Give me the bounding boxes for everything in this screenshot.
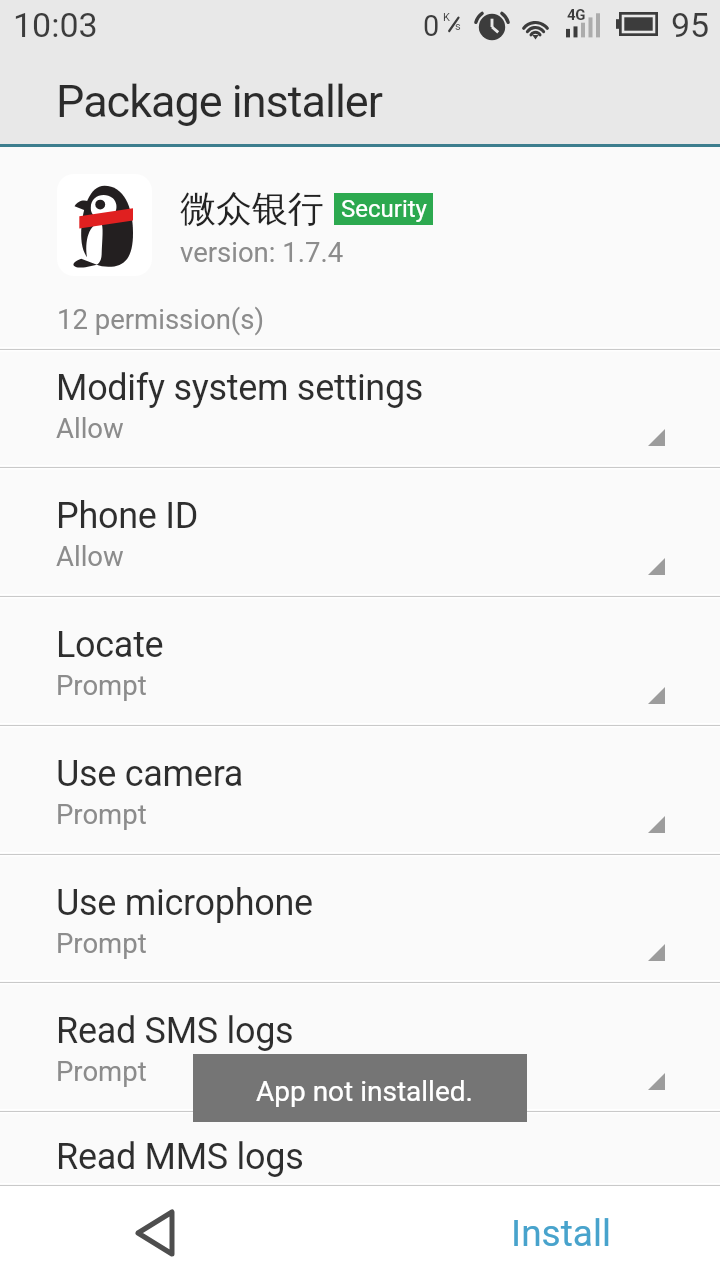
staticText: 0: [423, 9, 440, 43]
staticText: K: [443, 11, 450, 24]
staticText: 95: [671, 5, 710, 45]
staticText: Prompt: [56, 798, 147, 830]
staticText: 4G: [567, 6, 586, 24]
staticText: Use microphone: [56, 882, 313, 924]
staticText: Allow: [56, 540, 124, 572]
button[interactable]: Locate: [0, 597, 720, 725]
staticText: Read MMS logs: [56, 1136, 304, 1178]
staticText: Locate: [56, 624, 164, 666]
button[interactable]: Read SMS logs: [0, 983, 720, 1111]
staticText: Security: [341, 195, 427, 223]
staticText: Phone ID: [56, 495, 198, 537]
staticText: Use camera: [56, 753, 244, 795]
staticText: Modify system settings: [56, 367, 424, 409]
staticText: s: [455, 20, 461, 33]
button[interactable]: Back: [110, 1186, 200, 1280]
staticText: Prompt: [56, 1055, 147, 1087]
staticText: 10:03: [13, 5, 98, 45]
button[interactable]: Modify system settings: [0, 350, 720, 467]
staticText: Prompt: [56, 927, 147, 959]
button[interactable]: Use camera: [0, 726, 720, 854]
button[interactable]: Install: [480, 1186, 642, 1280]
staticText: 微众银行: [180, 186, 324, 231]
staticText: Install: [511, 1212, 611, 1255]
staticText: Allow: [56, 412, 124, 444]
button[interactable]: Phone ID: [0, 468, 720, 596]
staticText: Prompt: [56, 669, 147, 701]
staticText: App not installed.: [256, 1075, 473, 1108]
staticText: Read SMS logs: [56, 1010, 294, 1052]
staticText: 12 permission(s): [57, 303, 265, 335]
staticText: version: 1.7.4: [180, 236, 344, 268]
button[interactable]: Use microphone: [0, 855, 720, 982]
staticText: Package installer: [56, 75, 382, 128]
